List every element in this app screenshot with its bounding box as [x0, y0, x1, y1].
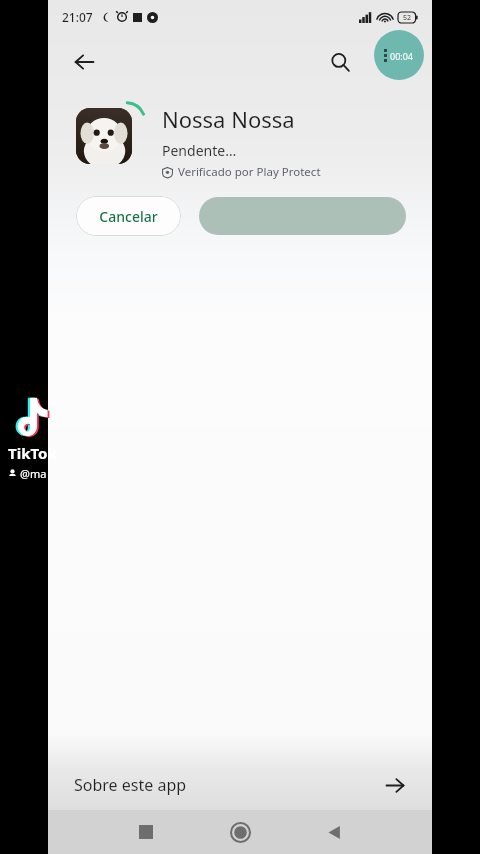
button[interactable]: Pesquisar: [318, 40, 362, 84]
staticText: 52: [403, 13, 412, 23]
staticText: Pendente…: [162, 141, 237, 160]
button[interactable]: Recentes: [126, 812, 166, 852]
staticText: 21:07: [62, 9, 93, 25]
staticText: Verificado por Play Protect: [178, 164, 321, 180]
button[interactable]: Voltar: [314, 812, 354, 852]
staticText: Cancelar: [99, 207, 158, 226]
staticText: 00:04: [390, 50, 414, 62]
staticText: @ma: [20, 466, 47, 481]
button[interactable]: Gravando 00:04: [374, 30, 424, 80]
button[interactable]: Início: [220, 812, 260, 852]
staticText: Sobre este app: [74, 774, 187, 796]
button[interactable]: Cancelar: [76, 196, 181, 236]
button[interactable]: [199, 197, 406, 235]
button[interactable]: Sobre este app: [48, 761, 432, 809]
button[interactable]: Voltar: [62, 40, 106, 84]
staticText: TikTok: [8, 443, 57, 463]
staticText: Nossa Nossa: [162, 104, 295, 134]
